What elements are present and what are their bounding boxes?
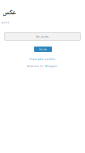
button[interactable]: Home [34,46,52,52]
staticText: Home [39,48,47,51]
staticText: Powered by [27,64,44,67]
staticText: No posts. [36,35,49,38]
staticText: عکس [2,7,15,18]
staticText: View web version [29,57,55,60]
button[interactable]: Blogger. [45,64,58,67]
button[interactable]: View web version [0,56,85,61]
staticText: good [1,21,9,24]
staticText: Blogger. [45,64,58,67]
